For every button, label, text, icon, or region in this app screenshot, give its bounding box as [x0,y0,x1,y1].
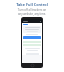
staticText: Turn off all trackers on any website, an… [2,8,62,15]
button[interactable]: App preview [21,17,43,68]
button[interactable]: Turn off trackers [23,36,41,39]
staticText: Take Full Control [0,2,64,7]
button[interactable]: Home [31,64,34,67]
button[interactable]: Take Full Control [0,2,64,7]
